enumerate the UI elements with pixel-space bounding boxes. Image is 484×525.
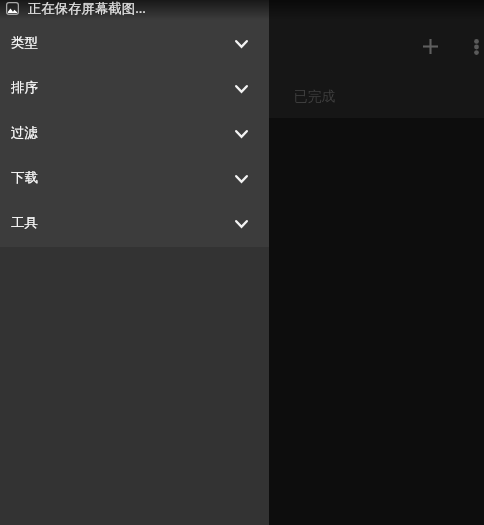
staticText: 类型 bbox=[11, 34, 38, 51]
button[interactable]: 排序 bbox=[0, 65, 269, 110]
button[interactable]: 正在保存屏幕截图... bbox=[0, 0, 484, 20]
button[interactable]: More options bbox=[453, 23, 484, 70]
staticText: 下载 bbox=[11, 169, 38, 186]
button[interactable]: 类型 bbox=[0, 20, 269, 65]
button[interactable]: 已完成 bbox=[283, 75, 347, 111]
button[interactable]: 过滤 bbox=[0, 110, 269, 155]
button[interactable]: 工具 bbox=[0, 200, 269, 245]
staticText: 过滤 bbox=[11, 124, 38, 141]
button[interactable] bbox=[0, 118, 484, 525]
staticText: 工具 bbox=[11, 214, 38, 231]
staticText: 正在保存屏幕截图... bbox=[28, 0, 146, 17]
button[interactable]: 下载 bbox=[0, 155, 269, 200]
staticText: 排序 bbox=[11, 79, 38, 96]
staticText: 已完成 bbox=[294, 88, 336, 105]
button[interactable]: Add bbox=[407, 23, 454, 70]
